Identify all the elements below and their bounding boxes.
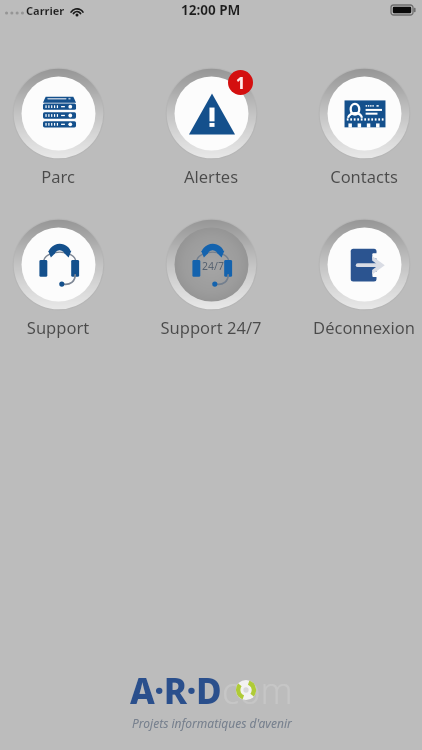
staticText: Déconnexion (294, 316, 422, 338)
staticText: Carrier (26, 3, 65, 18)
button[interactable]: Parc (0, 61, 128, 187)
staticText: Alertes (141, 165, 281, 187)
staticText: Support (0, 316, 128, 338)
button[interactable]: Contacts (294, 61, 422, 187)
staticText: Parc (0, 165, 128, 187)
staticText: 12:00 PM (181, 1, 241, 19)
staticText: Support 24/7 (141, 316, 281, 338)
staticText: 24/7 (202, 259, 224, 273)
staticText: Projets informatiques d'avenir (132, 715, 292, 731)
button[interactable]: Support (0, 212, 128, 338)
staticText: 1 (236, 72, 246, 94)
button[interactable]: 24/7 (141, 212, 281, 338)
staticText: Contacts (294, 165, 422, 187)
button[interactable]: 1 (141, 61, 281, 187)
staticText: A·R·D (130, 667, 222, 715)
button[interactable]: Déconnexion (294, 212, 422, 338)
staticText: com (222, 666, 293, 715)
